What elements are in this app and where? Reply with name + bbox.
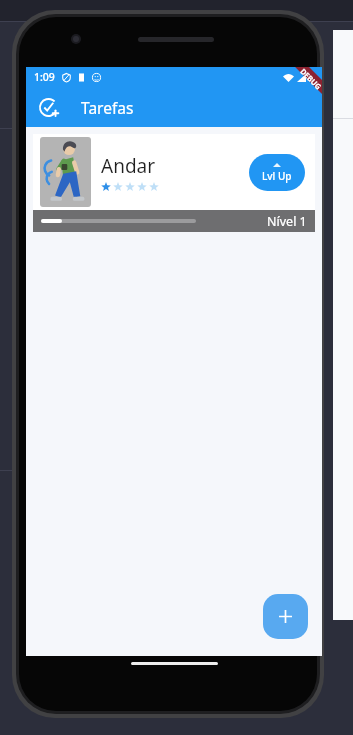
button[interactable]: Lvl Up — [249, 154, 305, 191]
staticText: 1:09 — [34, 70, 55, 84]
staticText: Tarefas — [81, 97, 134, 118]
staticText: Lvl Up — [262, 169, 292, 183]
staticText: Nível 1 — [267, 213, 307, 230]
button[interactable]: Andar — [33, 134, 315, 232]
staticText: Andar — [101, 153, 156, 179]
staticText: DEBUG — [298, 66, 324, 92]
button[interactable]: Adicionar — [263, 594, 308, 639]
button[interactable]: Nova tarefa — [32, 91, 64, 123]
